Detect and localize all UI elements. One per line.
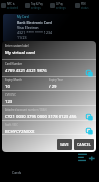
staticText: settings — [56, 6, 66, 10]
staticText: 10 — [5, 84, 10, 90]
staticText: SAVE — [60, 142, 69, 147]
staticText: 4321 **** **** 1234 — [17, 30, 53, 35]
staticText: Enter custom label — [5, 44, 29, 48]
staticText: My Card — [17, 15, 29, 19]
button[interactable]: Swift / BIC — [2, 121, 96, 135]
button[interactable]: SAVE — [57, 139, 72, 150]
staticText: My virtual card — [5, 50, 35, 56]
staticText: Cards — [12, 170, 22, 175]
staticText: CVV/CVC — [5, 93, 16, 97]
button[interactable]: My Card — [3, 14, 96, 42]
staticText: 4789 4321 4321 9876 — [5, 68, 47, 74]
staticText: 123 — [5, 99, 13, 105]
button[interactable]: G Pay — [50, 3, 55, 8]
staticText: Card Number — [5, 62, 23, 66]
staticText: activated — [7, 6, 19, 10]
staticText: CANCEL — [77, 142, 91, 147]
staticText: CY21 0030 3795 0000 3178 0123 456 — [5, 114, 77, 120]
staticText: Tap & Pay — [31, 2, 43, 6]
button[interactable]: PIN — [75, 3, 80, 8]
staticText: settings — [31, 6, 41, 10]
button[interactable]: Card Number — [2, 60, 96, 77]
button[interactable]: CVV/CVC — [2, 91, 96, 106]
staticText: BCHYCY2NXXX — [5, 129, 35, 135]
button[interactable]: Attached account number / IBAN — [2, 106, 96, 121]
button[interactable]: Add card — [77, 151, 95, 162]
button[interactable]: Copy Swift / BIC — [86, 128, 93, 135]
staticText: / 29 — [49, 84, 57, 90]
staticText: status — [81, 6, 89, 10]
staticText: NFC is — [7, 2, 15, 6]
staticText: G Pay — [56, 2, 63, 6]
button[interactable]: Copy Card Number — [86, 70, 93, 77]
staticText: PIN — [81, 2, 86, 6]
button[interactable]: NFC is — [1, 3, 6, 8]
button[interactable]: CANCEL — [74, 139, 94, 150]
staticText: Swift / BIC — [5, 123, 18, 127]
button[interactable]: Copy Attached account number / IBAN — [86, 114, 93, 121]
button[interactable]: Enter custom label — [2, 41, 96, 60]
staticText: Expiry Month — [5, 78, 22, 82]
staticText: 11/23 — [17, 35, 27, 40]
staticText: Bank Electronic Card — [17, 20, 52, 25]
button[interactable]: Tap & Pay — [25, 3, 30, 8]
staticText: Attached account number / IBAN — [5, 108, 47, 112]
button[interactable]: Cards — [0, 162, 33, 182]
staticText: Expiry Year — [49, 78, 63, 82]
staticText: Visa Electron — [17, 25, 39, 30]
